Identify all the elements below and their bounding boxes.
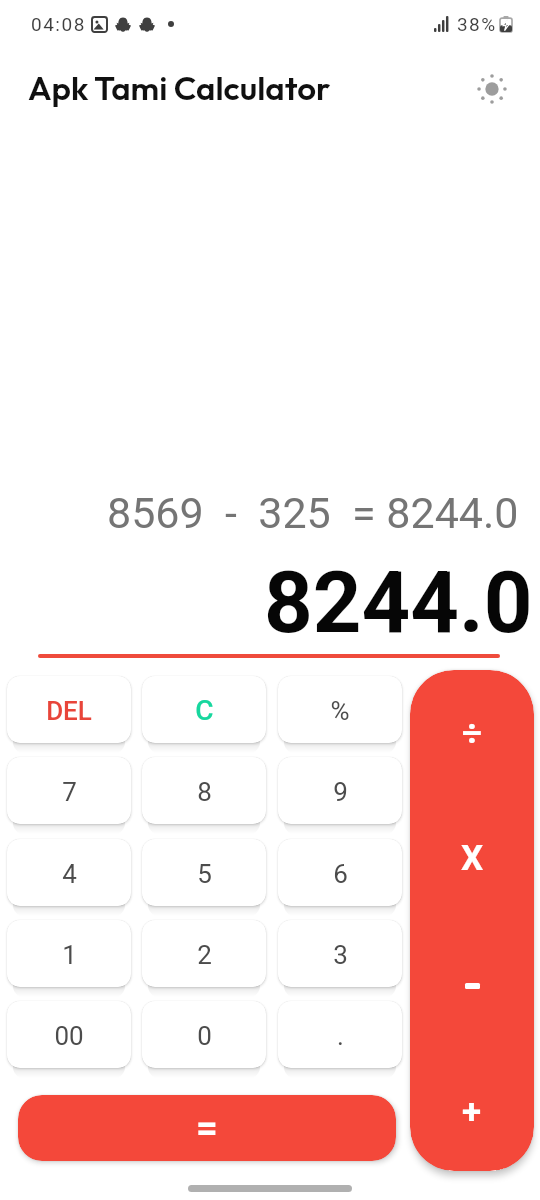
staticText: 5: [197, 859, 212, 889]
button[interactable]: 1: [7, 920, 131, 987]
button[interactable]: 5: [142, 839, 266, 906]
button[interactable]: =: [18, 1095, 396, 1161]
button[interactable]: Add: [410, 1046, 534, 1171]
button[interactable]: C: [142, 676, 266, 743]
button[interactable]: %: [278, 676, 402, 743]
button[interactable]: .: [278, 1001, 402, 1068]
button[interactable]: 7: [7, 757, 131, 824]
staticText: 4: [62, 859, 77, 889]
staticText: 6: [333, 859, 348, 889]
button[interactable]: 4: [7, 839, 131, 906]
staticText: 0: [197, 1021, 212, 1051]
staticText: 2: [197, 940, 212, 970]
staticText: 7: [62, 777, 77, 807]
staticText: 3: [333, 940, 348, 970]
staticText: =: [196, 1106, 218, 1151]
staticText: Apk Tami Calculator: [28, 67, 331, 109]
button[interactable]: 8: [142, 757, 266, 824]
staticText: 8: [197, 777, 212, 807]
staticText: .: [337, 1021, 344, 1051]
staticText: 8244.0: [264, 553, 533, 653]
button[interactable]: 2: [142, 920, 266, 987]
staticText: ÷: [462, 713, 482, 754]
button[interactable]: DEL: [7, 676, 131, 743]
staticText: %: [330, 696, 350, 726]
staticText: 00: [54, 1021, 84, 1051]
staticText: 1: [62, 940, 77, 970]
button[interactable]: 0: [142, 1001, 266, 1068]
button[interactable]: Toggle day night theme: [470, 67, 514, 111]
staticText: DEL: [46, 696, 92, 726]
button[interactable]: 9: [278, 757, 402, 824]
button[interactable]: Subtract: [410, 921, 534, 1046]
staticText: 8569 - 325 = 8244.0: [107, 488, 519, 538]
staticText: 04:08: [31, 13, 86, 35]
staticText: 9: [333, 777, 348, 807]
staticText: X: [461, 838, 484, 879]
staticText: +: [462, 1092, 482, 1133]
button[interactable]: 6: [278, 839, 402, 906]
button[interactable]: Multiply: [410, 796, 534, 921]
staticText: 38%: [457, 13, 497, 35]
button[interactable]: 00: [7, 1001, 131, 1068]
button[interactable]: 3: [278, 920, 402, 987]
staticText: C: [195, 694, 214, 727]
button[interactable]: Divide: [410, 670, 534, 796]
